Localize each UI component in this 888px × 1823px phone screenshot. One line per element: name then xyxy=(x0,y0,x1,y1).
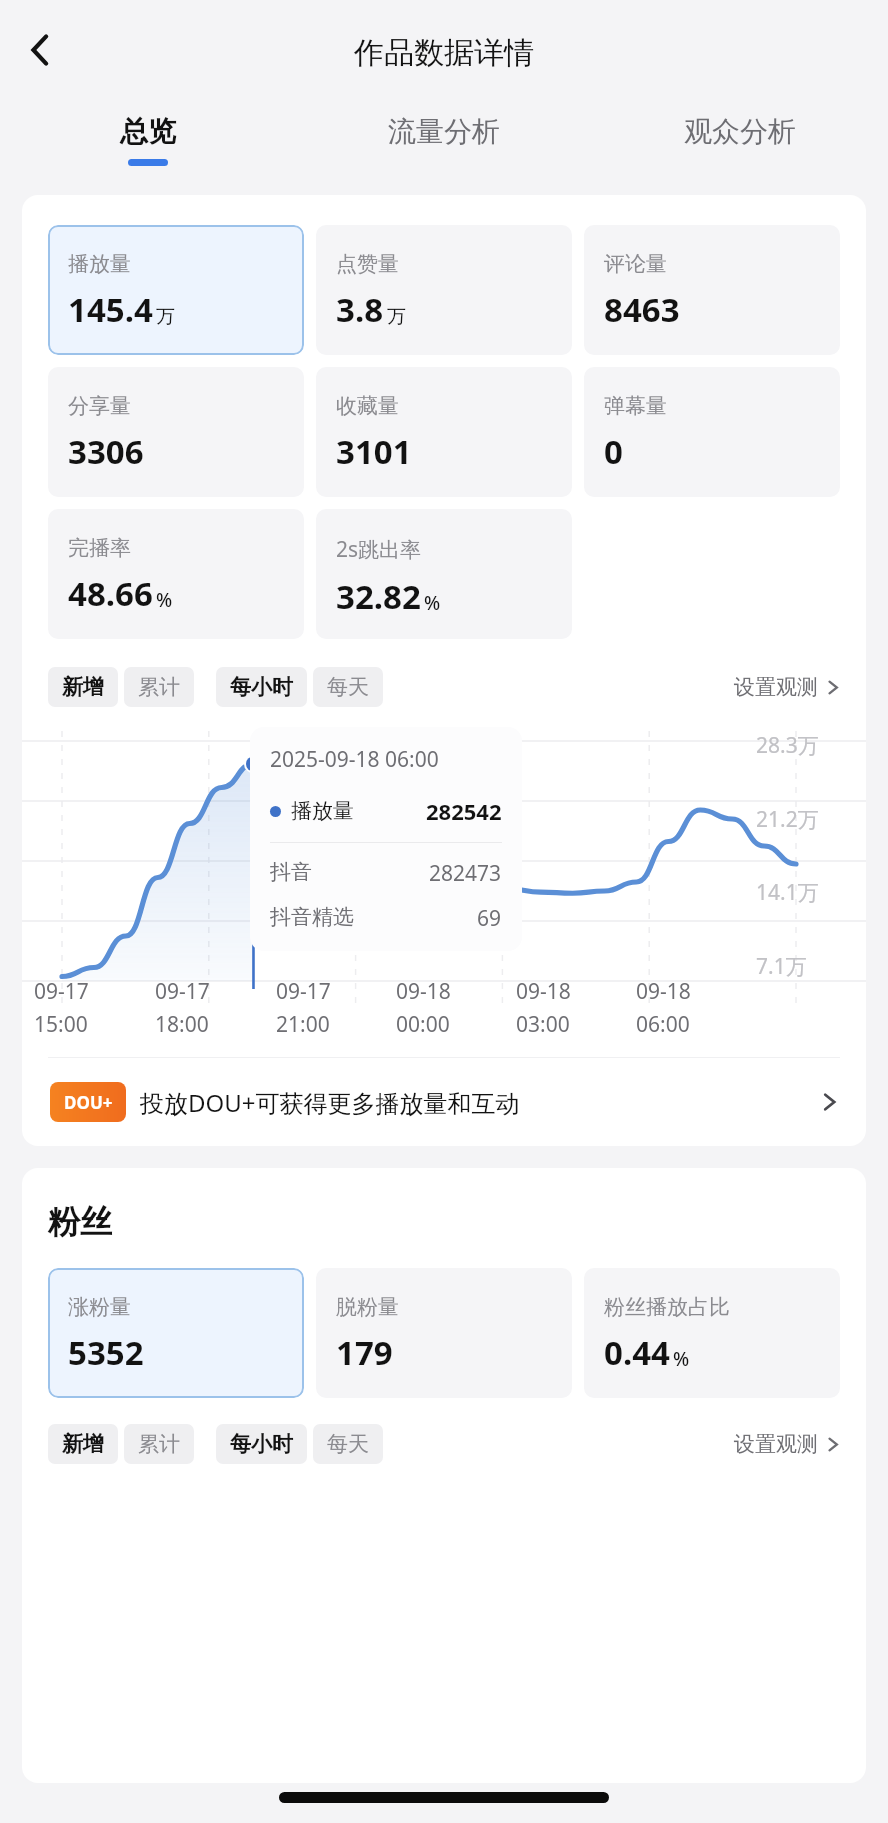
staticText: 点赞量 xyxy=(336,251,399,277)
button[interactable]: 观众分析 xyxy=(592,100,888,195)
staticText: 分享量 xyxy=(68,393,131,419)
staticText: 每小时 xyxy=(230,674,293,700)
button[interactable]: 脱粉量 xyxy=(316,1268,572,1398)
button[interactable]: 每小时 xyxy=(216,1424,307,1464)
staticText: 8463 xyxy=(604,287,680,332)
staticText: 3306 xyxy=(68,429,144,474)
button[interactable]: 完播率 xyxy=(48,509,304,639)
staticText: 完播率 xyxy=(68,535,131,561)
staticText: 3.8 xyxy=(336,287,384,332)
staticText: 09-18 xyxy=(396,977,451,1006)
button[interactable]: 收藏量 xyxy=(316,367,572,497)
staticText: 09-17 xyxy=(34,977,89,1006)
staticText: 涨粉量 xyxy=(68,1294,131,1320)
button[interactable]: 播放量 xyxy=(48,225,304,355)
staticText: 收藏量 xyxy=(336,393,399,419)
staticText: 3101 xyxy=(336,429,412,474)
staticText: 每天 xyxy=(327,674,369,700)
staticText: 设置观测 xyxy=(734,674,818,700)
staticText: DOU+ xyxy=(64,1091,113,1114)
staticText: 弹幕量 xyxy=(604,393,667,419)
button[interactable]: 流量分析 xyxy=(296,100,592,195)
button[interactable]: 累计 xyxy=(124,1424,194,1464)
staticText: 21.2万 xyxy=(756,805,819,834)
button[interactable]: 粉丝播放占比 xyxy=(584,1268,840,1398)
staticText: 抖音 xyxy=(270,859,312,885)
staticText: 累计 xyxy=(138,1431,180,1457)
staticText: 145.4 xyxy=(68,287,153,332)
staticText: 每天 xyxy=(327,1431,369,1457)
staticText: 累计 xyxy=(138,674,180,700)
staticText: 5352 xyxy=(68,1330,144,1375)
button[interactable]: Back xyxy=(14,24,66,76)
staticText: 28.3万 xyxy=(756,731,819,760)
staticText: 21:00 xyxy=(276,1010,330,1039)
staticText: 万 xyxy=(387,305,406,329)
button[interactable]: 分享量 xyxy=(48,367,304,497)
button[interactable]: 新增 xyxy=(48,667,118,707)
button[interactable]: 2s跳出率 xyxy=(316,509,572,639)
button[interactable]: 总览 xyxy=(0,100,296,195)
staticText: 0 xyxy=(604,429,623,474)
staticText: 播放量 xyxy=(291,798,354,824)
staticText: 粉丝 xyxy=(48,1202,112,1242)
button[interactable]: 新增 xyxy=(48,1424,118,1464)
staticText: 282473 xyxy=(429,859,502,888)
staticText: 15:00 xyxy=(34,1010,88,1039)
button[interactable]: 点赞量 xyxy=(316,225,572,355)
staticText: 作品数据详情 xyxy=(354,34,534,72)
staticText: 万 xyxy=(156,305,175,329)
button[interactable]: 每小时 xyxy=(216,667,307,707)
staticText: 投放DOU+可获得更多播放量和互动 xyxy=(140,1086,520,1119)
staticText: % xyxy=(673,1346,690,1372)
staticText: 48.66 xyxy=(68,571,153,616)
staticText: 282542 xyxy=(426,796,502,826)
staticText: 脱粉量 xyxy=(336,1294,399,1320)
staticText: 设置观测 xyxy=(734,1431,818,1457)
staticText: 32.82 xyxy=(336,574,421,619)
staticText: 2s跳出率 xyxy=(336,535,422,564)
button[interactable]: 累计 xyxy=(124,667,194,707)
staticText: 观众分析 xyxy=(684,114,796,149)
staticText: 流量分析 xyxy=(388,114,500,149)
staticText: 新增 xyxy=(62,674,104,700)
button[interactable]: 设置观测 xyxy=(730,1427,844,1461)
staticText: 179 xyxy=(336,1330,393,1375)
staticText: 18:00 xyxy=(155,1010,209,1039)
staticText: 总览 xyxy=(120,114,176,149)
button[interactable]: 评论量 xyxy=(584,225,840,355)
button[interactable]: 设置观测 xyxy=(730,670,844,704)
button[interactable]: 弹幕量 xyxy=(584,367,840,497)
staticText: 00:00 xyxy=(396,1010,450,1039)
staticText: 播放量 xyxy=(68,251,131,277)
staticText: 14.1万 xyxy=(756,878,819,907)
button[interactable]: 涨粉量 xyxy=(48,1268,304,1398)
staticText: % xyxy=(156,587,173,613)
staticText: 评论量 xyxy=(604,251,667,277)
staticText: 69 xyxy=(477,904,502,933)
staticText: 新增 xyxy=(62,1431,104,1457)
staticText: 7.1万 xyxy=(756,952,807,981)
staticText: 抖音精选 xyxy=(270,904,354,930)
staticText: % xyxy=(424,590,441,616)
button[interactable]: 每天 xyxy=(313,667,383,707)
button[interactable]: DOU+ xyxy=(22,1058,866,1146)
staticText: 0.44 xyxy=(604,1330,670,1375)
button[interactable]: 每天 xyxy=(313,1424,383,1464)
staticText: 06:00 xyxy=(636,1010,690,1039)
staticText: 09-18 xyxy=(516,977,571,1006)
staticText: 2025-09-18 06:00 xyxy=(270,745,439,774)
staticText: 09-17 xyxy=(276,977,331,1006)
staticText: 粉丝播放占比 xyxy=(604,1294,730,1320)
staticText: 每小时 xyxy=(230,1431,293,1457)
staticText: 09-17 xyxy=(155,977,210,1006)
staticText: 09-18 xyxy=(636,977,691,1006)
staticText: 03:00 xyxy=(516,1010,570,1039)
